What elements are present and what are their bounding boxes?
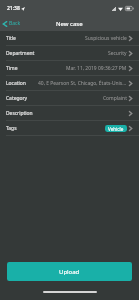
staticText: Vehicle	[108, 126, 124, 132]
staticText: Tags	[6, 125, 17, 132]
button[interactable]: Department	[0, 46, 139, 61]
button[interactable]: Description	[0, 106, 139, 121]
button[interactable]: Tags	[0, 121, 139, 136]
staticText: Location	[6, 80, 26, 87]
staticText: Title	[6, 35, 16, 42]
staticText: New case	[56, 20, 83, 28]
button[interactable]: Upload	[7, 262, 132, 281]
staticText: Back	[9, 20, 21, 27]
staticText: Department	[6, 50, 35, 57]
button[interactable]: Title	[0, 31, 139, 46]
staticText: Security	[108, 50, 127, 57]
button[interactable]: Category	[0, 91, 139, 106]
button[interactable]: Time	[0, 61, 139, 76]
staticText: Complaint	[103, 95, 127, 102]
staticText: Suspicious vehicle	[85, 35, 127, 42]
staticText: Upload	[59, 268, 80, 276]
staticText: Description	[6, 110, 33, 117]
button[interactable]: Location	[0, 76, 139, 91]
staticText: Time	[6, 65, 18, 72]
staticText: 21:38	[7, 5, 20, 12]
staticText: Mar. 11, 2019 09:36:27 PM	[66, 65, 127, 72]
button[interactable]: Back	[3, 20, 21, 27]
staticText: 40, E Pearson St, Chicago, États-Unis...	[38, 80, 127, 87]
staticText: Category	[6, 95, 28, 102]
